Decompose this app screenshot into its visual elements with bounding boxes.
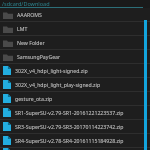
staticText: /sdcard/Download: [2, 0, 50, 7]
button[interactable]: Folder: [0, 50, 150, 63]
other: Folder: [3, 39, 13, 47]
other: File: [3, 122, 11, 131]
other: Folder: [3, 11, 13, 19]
button[interactable]: File: [0, 134, 150, 147]
other: File: [3, 80, 11, 89]
button[interactable]: File: [0, 148, 150, 150]
other: File: [3, 148, 11, 150]
other: File: [3, 136, 11, 145]
staticText: SamsungPayGear: [17, 53, 61, 60]
staticText: 302X_v4_hdpi_light_play-signed.zip: [15, 81, 101, 88]
button[interactable]: File: [0, 64, 150, 77]
other: Folder: [3, 53, 13, 61]
staticText: gesture_ota.zip: [15, 95, 53, 102]
other: File: [3, 66, 11, 75]
button[interactable]: File: [0, 78, 150, 91]
staticText: 302X_v4_hdpi_light-signed.zip: [15, 67, 88, 74]
button[interactable]: File: [0, 120, 150, 133]
staticText: SR4-SuperSU-v2.78-SR4-20161115184928.zip: [15, 137, 124, 144]
other: File: [3, 94, 11, 103]
staticText: New Folder: [17, 39, 45, 46]
other: Folder: [3, 25, 13, 33]
button[interactable]: Folder: [0, 8, 150, 21]
button[interactable]: Folder: [0, 36, 150, 49]
button[interactable]: File: [0, 106, 150, 119]
button[interactable]: File: [0, 92, 150, 105]
other: File: [3, 108, 11, 117]
button[interactable]: /sdcard/Download: [0, 0, 150, 7]
staticText: AAAROMS: [17, 11, 42, 18]
button[interactable]: Folder: [0, 22, 150, 35]
staticText: LMT: [17, 25, 28, 32]
staticText: SR1-SuperSU-v2.79-SR1-20161221223537.zip: [15, 109, 124, 116]
staticText: SR3-SuperSU-v2.79-SR3-20170114223742.zip: [15, 123, 124, 130]
